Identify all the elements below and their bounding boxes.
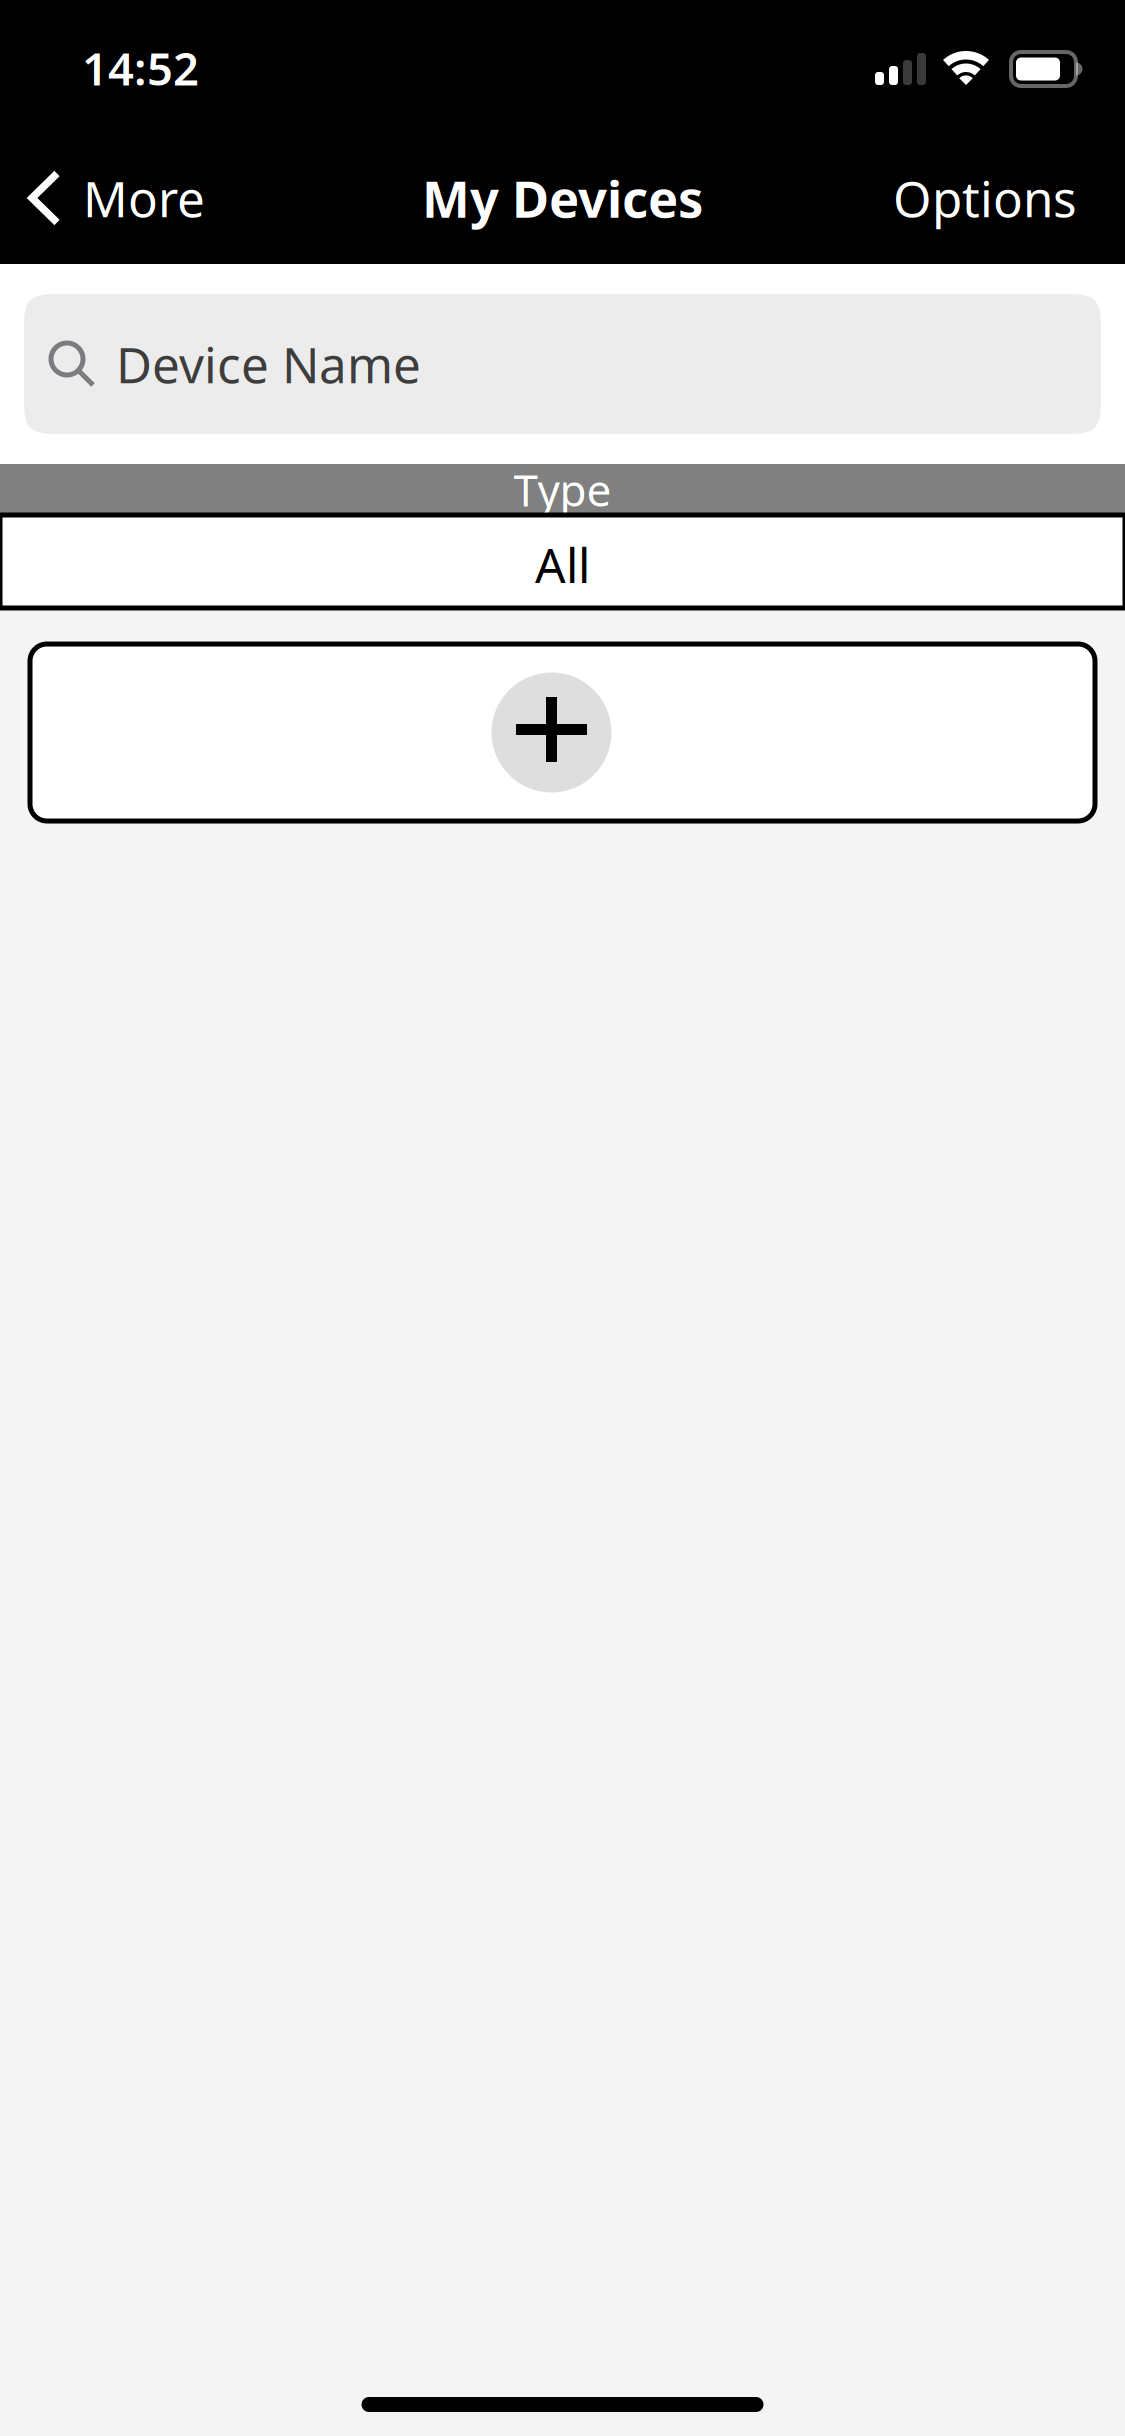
staticText: Type	[513, 460, 611, 519]
button[interactable]: Add device	[30, 644, 1095, 821]
staticText: 14:52	[82, 38, 199, 98]
staticText: Options	[893, 165, 1077, 231]
staticText: My Devices	[422, 164, 703, 232]
staticText: More	[83, 165, 205, 231]
button[interactable]: All	[0, 515, 1125, 608]
staticText: Device Name	[116, 331, 421, 397]
staticText: All	[535, 533, 590, 596]
button[interactable]: More	[0, 132, 225, 264]
button[interactable]: Options	[869, 132, 1125, 264]
button[interactable]: Device Name	[24, 294, 1101, 434]
